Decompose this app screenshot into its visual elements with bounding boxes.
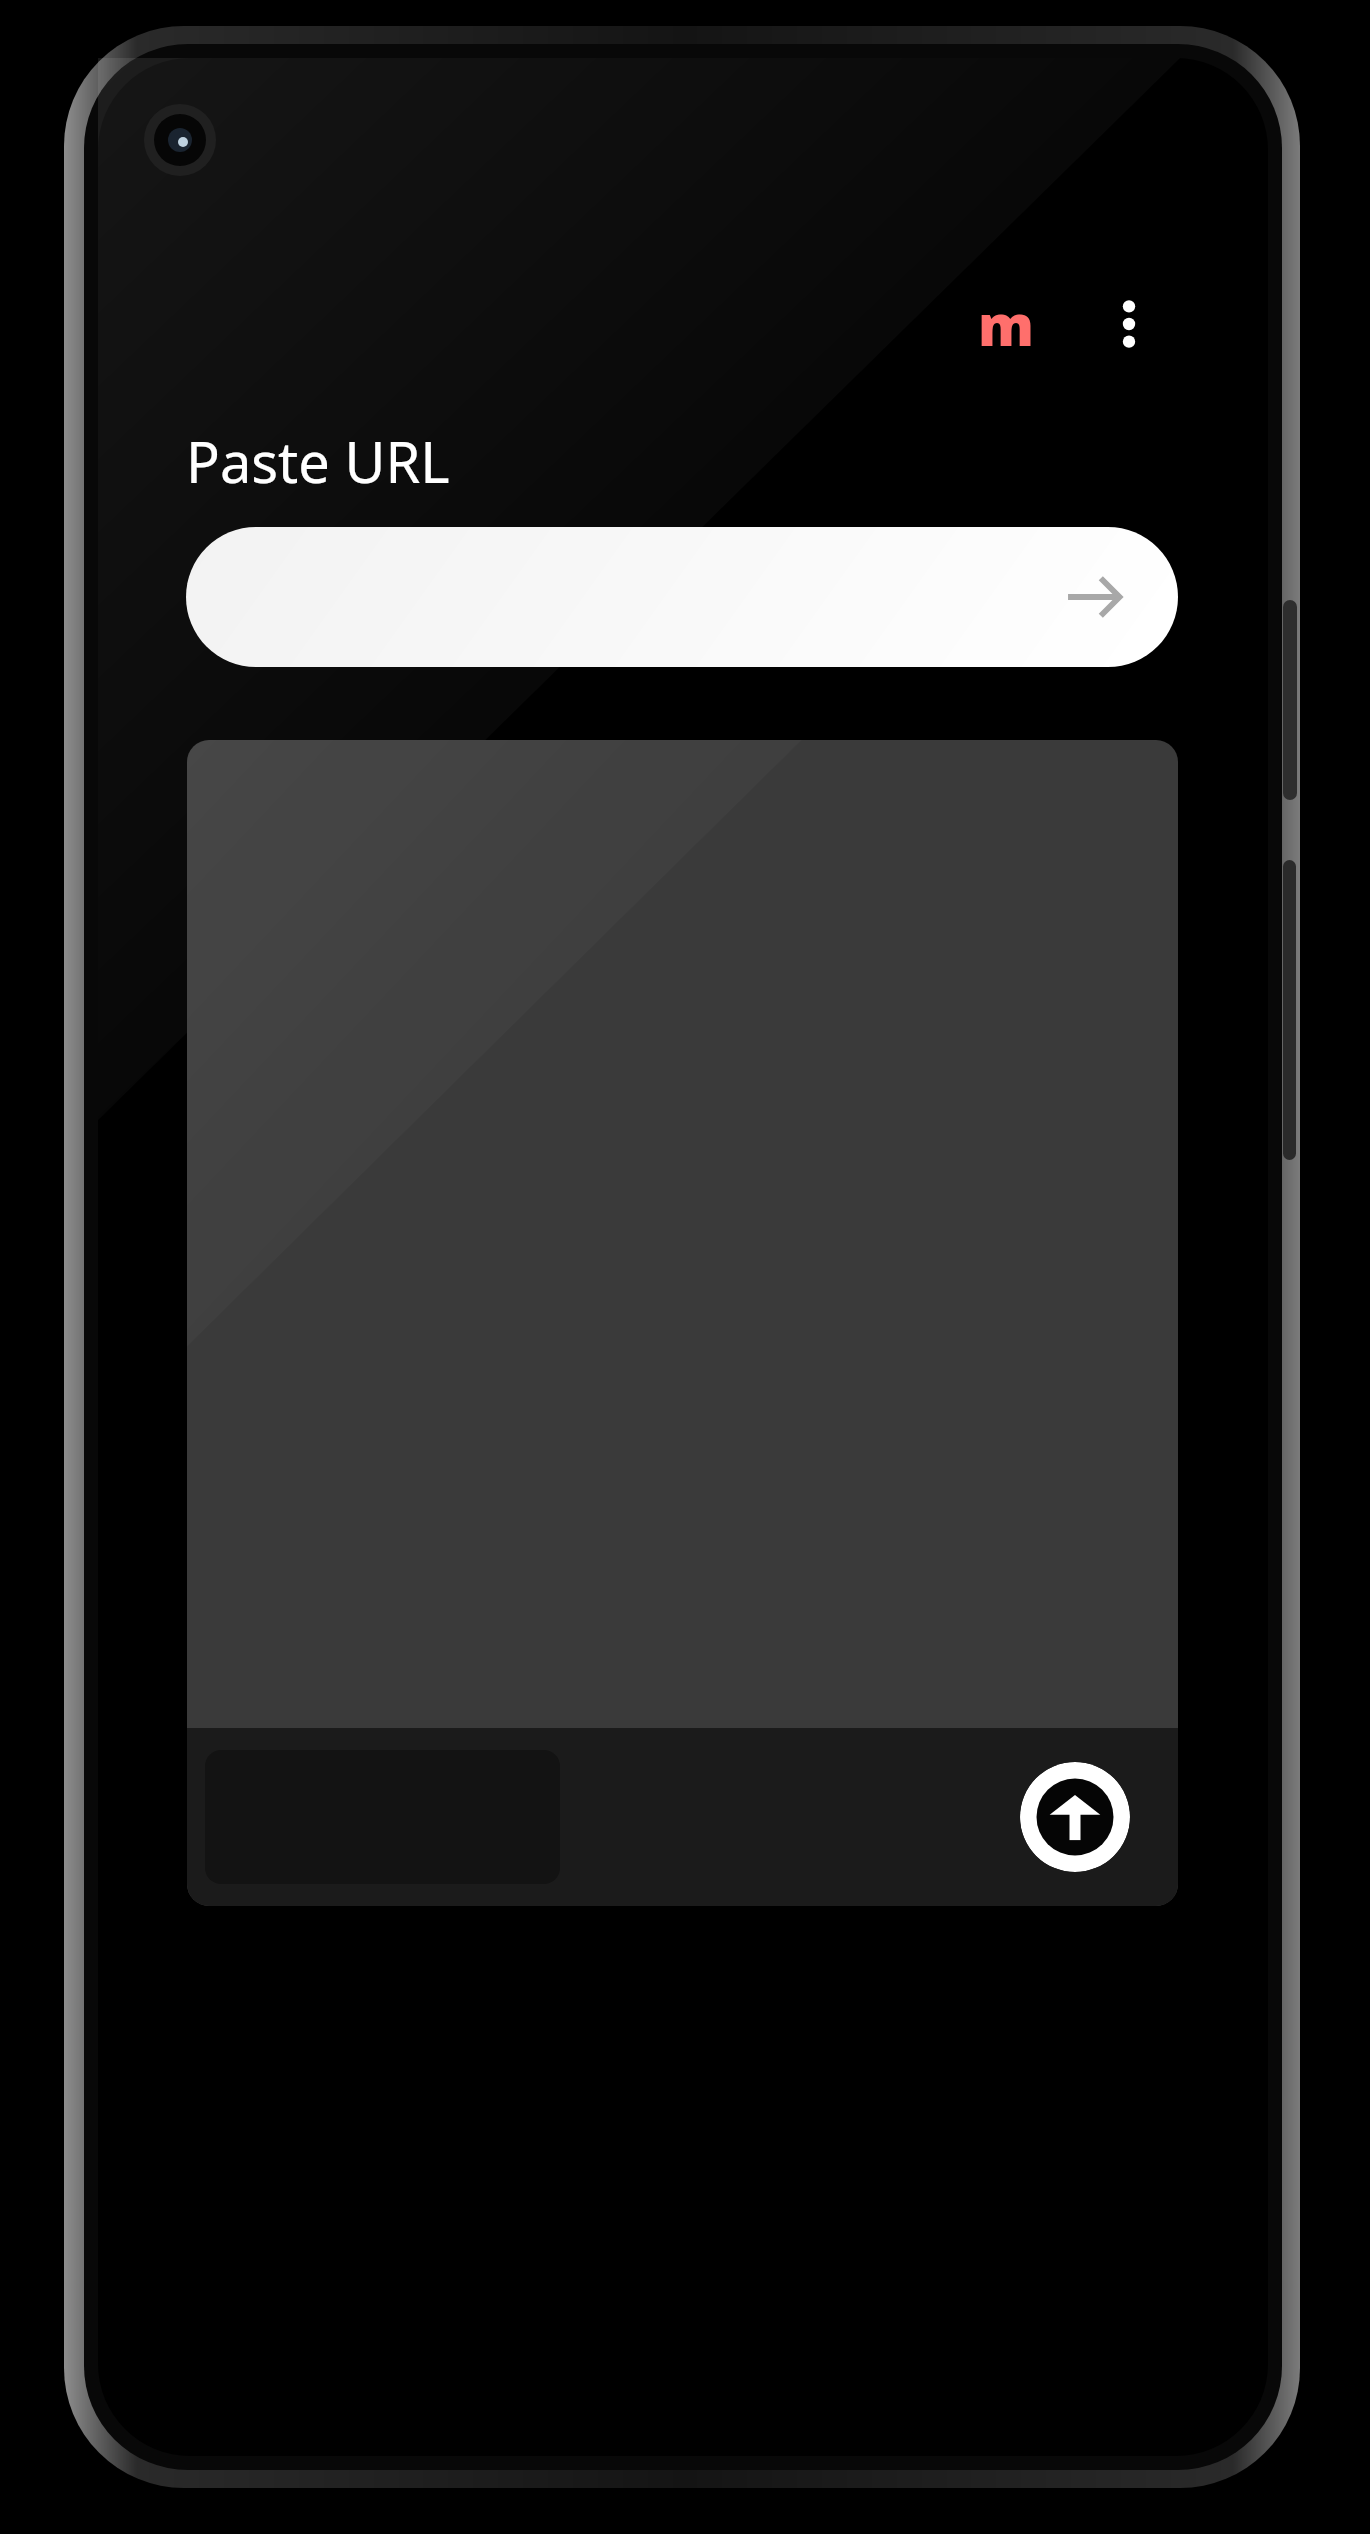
staticText: Paste URL xyxy=(186,423,450,499)
button[interactable]: More options xyxy=(1086,281,1172,367)
button[interactable]: Preview xyxy=(187,740,1178,1906)
button[interactable]: Brand logo xyxy=(963,281,1049,367)
button[interactable]: Download xyxy=(1020,1762,1130,1872)
button[interactable]: URL input field xyxy=(186,527,1178,667)
staticText: m xyxy=(978,286,1034,362)
